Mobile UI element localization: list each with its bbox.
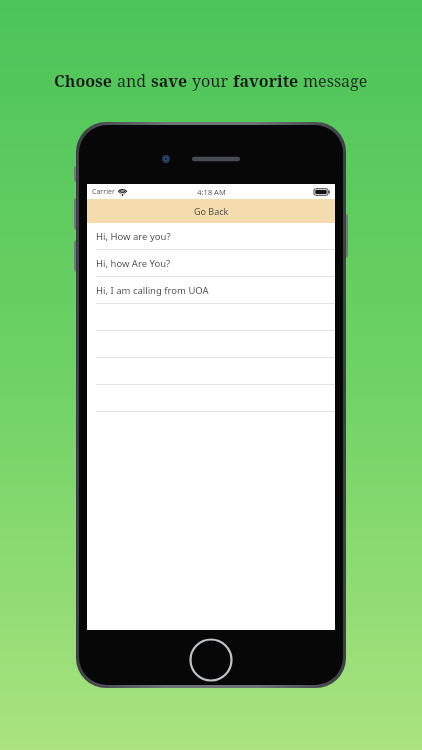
button[interactable] bbox=[87, 358, 335, 385]
staticText: Hi, I am calling from UOA bbox=[96, 284, 209, 297]
staticText: message bbox=[303, 70, 368, 92]
button[interactable] bbox=[87, 304, 335, 331]
staticText: favorite bbox=[233, 70, 303, 92]
staticText: Go Back bbox=[194, 205, 229, 217]
button[interactable] bbox=[87, 331, 335, 358]
staticText: your bbox=[192, 70, 233, 92]
button[interactable]: Hi, I am calling from UOA bbox=[87, 277, 335, 304]
staticText: and bbox=[117, 70, 151, 92]
staticText: Hi, how Are You? bbox=[96, 257, 171, 270]
staticText: Hi, How are you? bbox=[96, 230, 171, 243]
button[interactable]: Hi, How are you? bbox=[87, 223, 335, 250]
button[interactable] bbox=[87, 385, 335, 412]
staticText: save bbox=[151, 70, 192, 92]
button[interactable]: Hi, how Are You? bbox=[87, 250, 335, 277]
staticText: 4:18 AM bbox=[197, 187, 226, 197]
staticText: Choose bbox=[54, 70, 117, 92]
button[interactable]: Go Back bbox=[87, 199, 335, 223]
staticText: Carrier bbox=[92, 187, 115, 197]
